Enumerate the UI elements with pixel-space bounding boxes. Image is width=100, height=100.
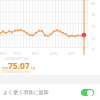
staticText: 78 <box>91 12 96 17</box>
staticText: 75.07 <box>8 60 30 71</box>
staticText: 8/19 <box>50 51 58 56</box>
button[interactable]: よく使う項目に追加 <box>0 84 100 100</box>
staticText: 74 <box>91 36 96 41</box>
button[interactable]: Toggle favourite <box>81 89 94 96</box>
staticText: 8/15 <box>14 51 22 56</box>
staticText: 2018年8月19日 <box>5 56 29 61</box>
staticText: 8/13 <box>0 51 8 56</box>
staticText: 80 <box>91 1 96 6</box>
staticText: kg <box>31 65 36 70</box>
staticText: 2018年8月19日 7:32 <box>2 70 29 74</box>
staticText: 8/21 <box>68 51 76 56</box>
staticText: 76 <box>91 24 96 29</box>
staticText: 8/17 <box>32 51 40 56</box>
staticText: よく使う項目に追加 <box>3 89 49 95</box>
staticText: 体重 <box>2 66 8 70</box>
staticText: 72 <box>91 47 96 52</box>
